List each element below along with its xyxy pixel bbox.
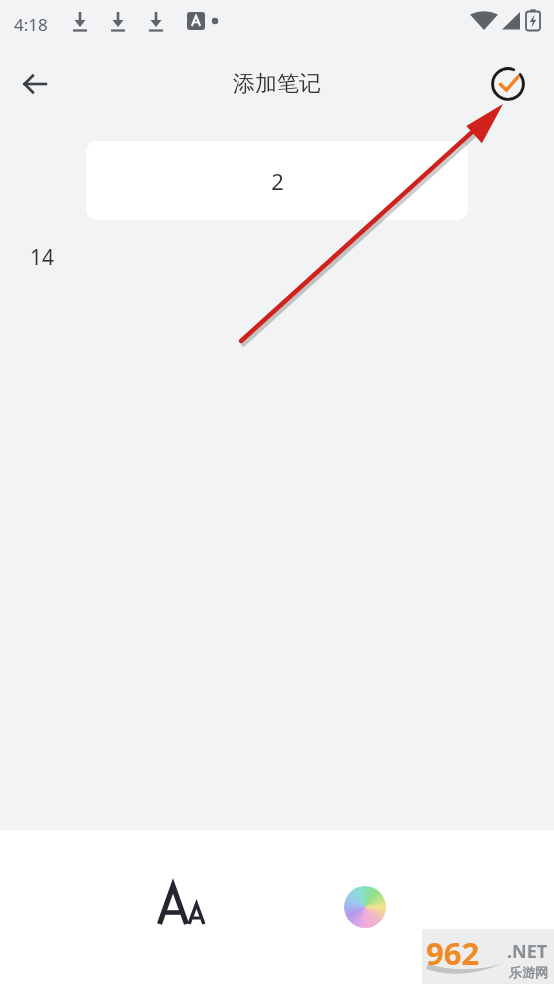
button[interactable]: 2 <box>86 141 468 220</box>
button[interactable]: Back <box>11 60 59 108</box>
staticText: 4:18 <box>14 13 48 36</box>
staticText: 添加笔记 <box>233 70 321 98</box>
button[interactable]: Color <box>330 872 400 942</box>
staticText: 乐游网 <box>509 964 548 980</box>
staticText: 14 <box>30 243 55 269</box>
staticText: 962 <box>426 932 480 974</box>
staticText: 2 <box>271 166 284 196</box>
staticText: .NET <box>507 939 548 964</box>
button[interactable]: Confirm <box>486 62 530 106</box>
button[interactable]: Text style <box>140 865 224 949</box>
